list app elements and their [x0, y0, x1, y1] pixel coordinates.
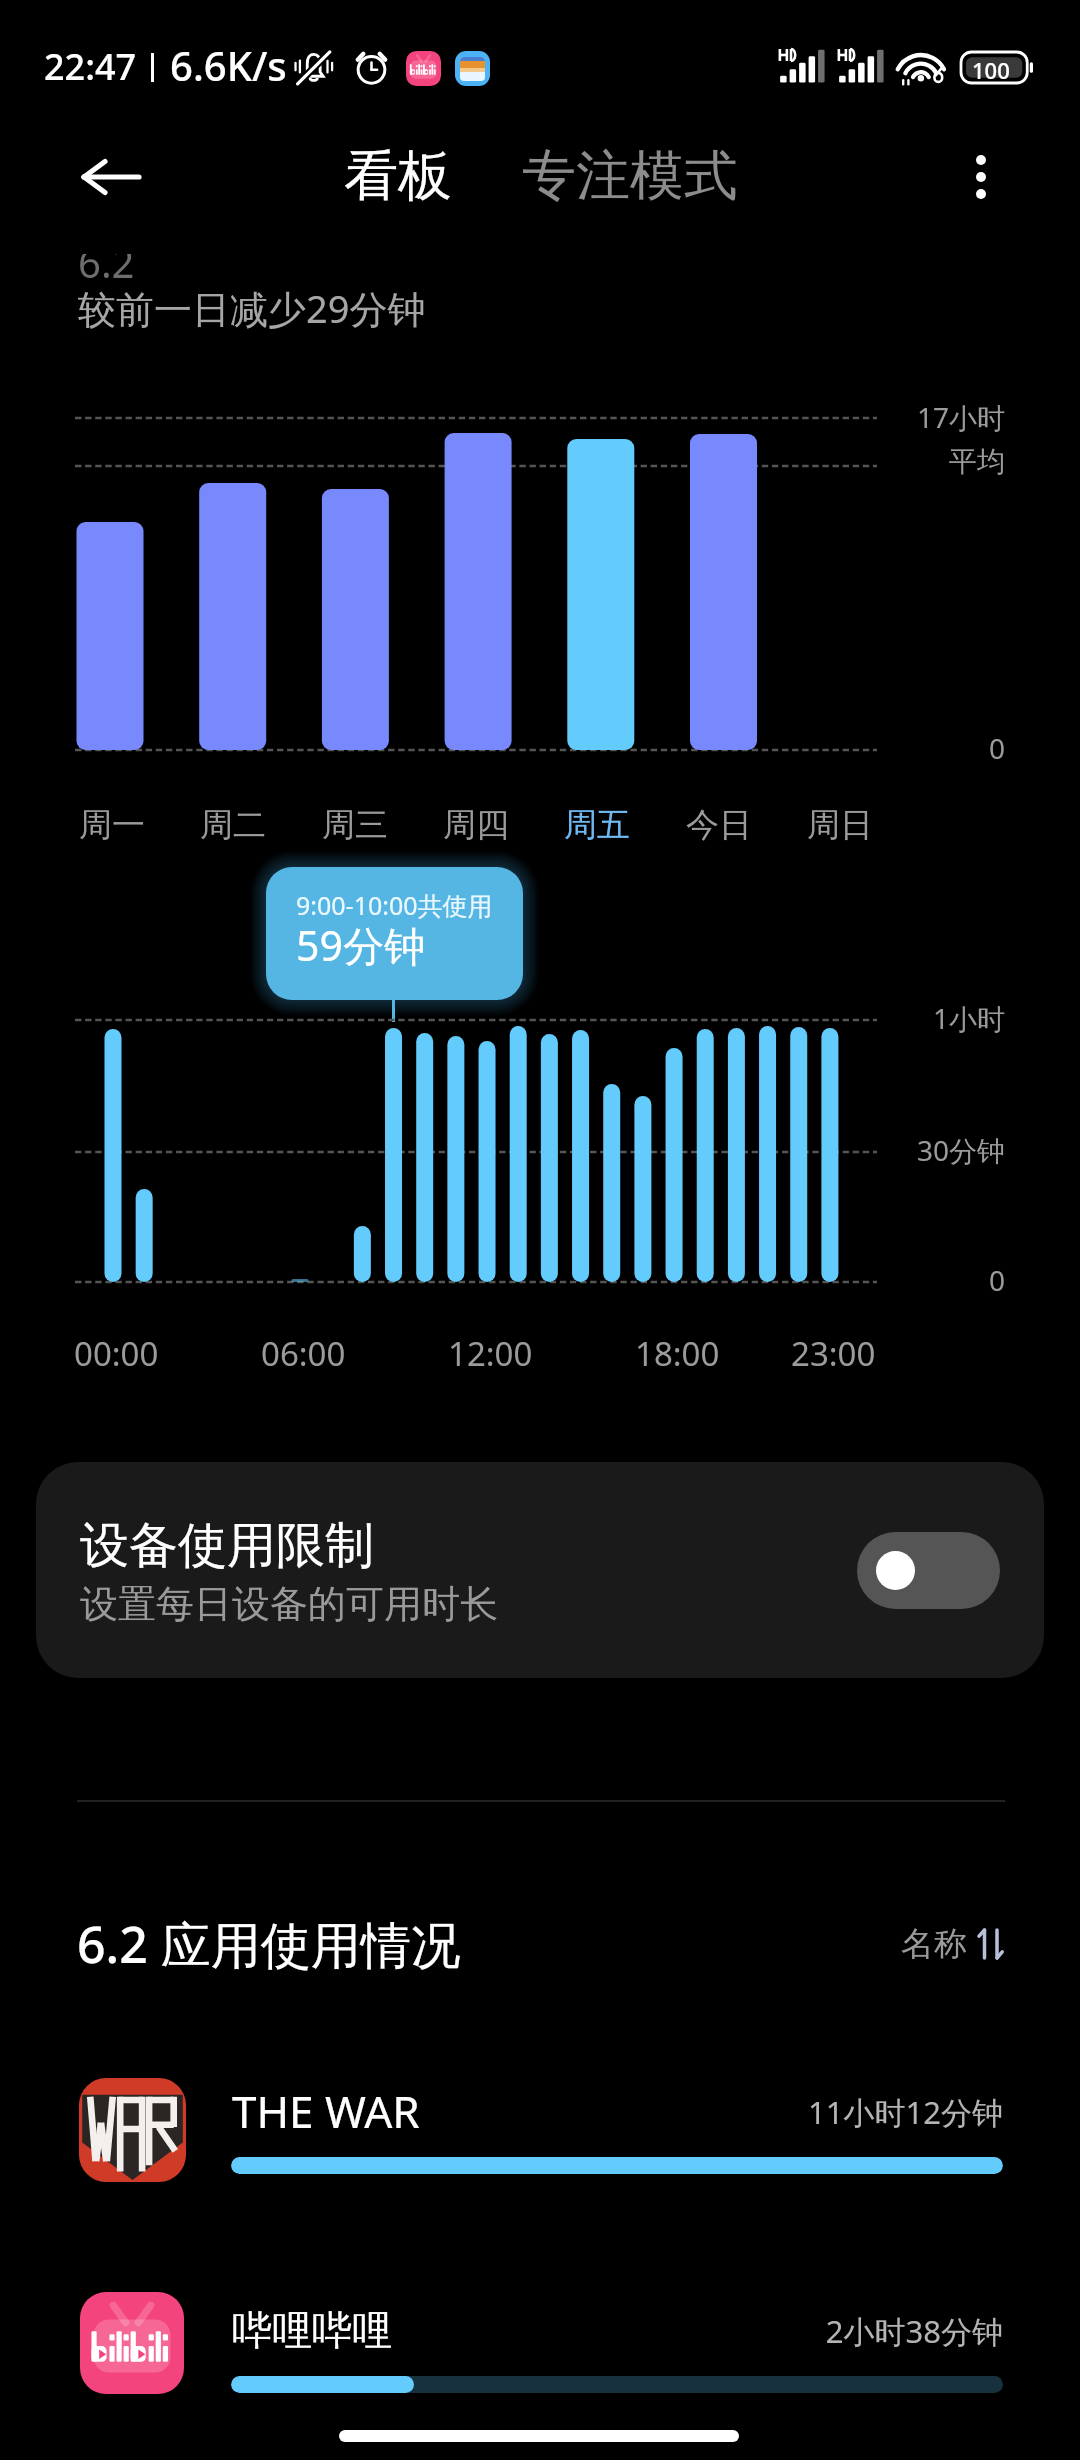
button[interactable]: 哔哩哔哩 2小时38分钟 [40, 2270, 1040, 2420]
button[interactable]: 看板 [320, 128, 476, 224]
staticText: 专注模式 [522, 142, 738, 210]
staticText: 18:00 [635, 1331, 720, 1376]
staticText: 23:00 [791, 1331, 876, 1376]
button[interactable]: 9:00-10:00共使用 [266, 867, 523, 1000]
staticText: 17小时 [700, 398, 1005, 436]
staticText: 1小时 [700, 999, 1005, 1037]
staticText: 0 [700, 729, 1005, 767]
staticText: 周四 [443, 804, 509, 846]
button[interactable]: Device usage limit toggle [857, 1532, 1000, 1609]
button[interactable]: 周一 [51, 795, 173, 855]
staticText: 00:00 [74, 1331, 159, 1376]
button[interactable]: 周四 [415, 795, 537, 855]
staticText: 设备使用限制 [80, 1515, 374, 1577]
button[interactable]: Back [69, 133, 157, 221]
button[interactable]: 设备使用限制 [36, 1462, 1044, 1678]
staticText: 30分钟 [700, 1131, 1005, 1169]
staticText: 6.2 [78, 235, 135, 289]
button[interactable]: 周二 [172, 795, 294, 855]
staticText: 59分钟 [296, 917, 425, 973]
button[interactable]: 今日 [658, 795, 780, 855]
staticText: 较前一日减少29分钟 [78, 282, 426, 334]
button[interactable]: 周日 [779, 795, 901, 855]
staticText: 周五 [564, 804, 630, 846]
staticText: 11小时12分钟 [600, 2091, 1003, 2133]
staticText: 100 [972, 55, 1010, 85]
staticText: 06:00 [261, 1331, 346, 1376]
staticText: 6.6K/s [170, 38, 287, 92]
staticText: 12:00 [448, 1331, 533, 1376]
button[interactable]: 周三 [294, 795, 416, 855]
staticText: 今日 [686, 804, 752, 846]
staticText: 周二 [200, 804, 266, 846]
staticText: 设置每日设备的可用时长 [80, 1580, 498, 1628]
button[interactable]: 周五 [536, 795, 658, 855]
button[interactable]: More options [937, 133, 1025, 221]
staticText: 22:47 [44, 42, 137, 91]
staticText: 0 [700, 1261, 1005, 1299]
staticText: 2小时38分钟 [600, 2310, 1003, 2352]
staticText: 看板 [344, 142, 452, 210]
staticText: THE WAR [232, 2081, 420, 2141]
staticText: 周一 [79, 804, 145, 846]
staticText: 名称 [901, 1923, 967, 1965]
button[interactable]: 专注模式 [498, 128, 762, 224]
staticText: 周日 [807, 804, 873, 846]
staticText: 9:00-10:00共使用 [296, 888, 493, 922]
staticText: 周三 [322, 804, 388, 846]
staticText: 哔哩哔哩 [232, 2305, 392, 2355]
staticText: 6.2 应用使用情况 [77, 1910, 461, 1978]
staticText: 平均 [700, 444, 1005, 479]
button[interactable]: 名称 [891, 1913, 1013, 1975]
button[interactable]: THE WAR 11小时12分钟 [40, 2056, 1040, 2206]
